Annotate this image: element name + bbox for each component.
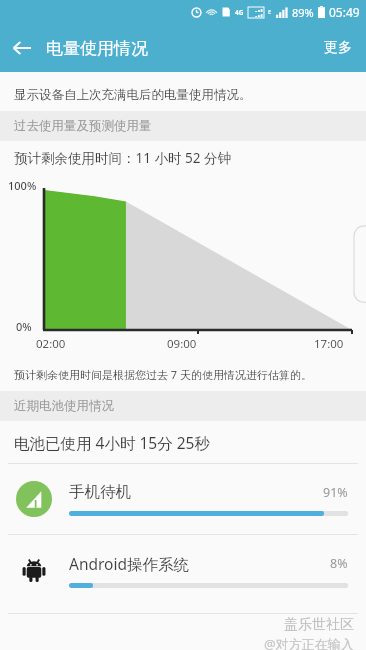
button[interactable]: Back [0, 26, 44, 70]
staticText: 手机待机 [69, 482, 131, 502]
staticText: 8% [330, 555, 348, 572]
button[interactable]: 手机待机 [0, 464, 366, 534]
staticText: 09:00 [167, 336, 197, 352]
staticText: 电池已使用 4小时 15分 25秒 [14, 432, 210, 453]
staticText: 4G [235, 8, 244, 17]
staticText: 预计剩余使用时间是根据您过去 7 天的使用情况进行估算的。 [14, 367, 313, 382]
staticText: 100% [8, 178, 37, 193]
staticText: 过去使用量及预测使用量 [14, 118, 152, 134]
staticText: 更多 [324, 39, 352, 57]
staticText: 盖乐世社区 [284, 616, 354, 634]
staticText: 预计剩余使用时间：11 小时 52 分钟 [14, 149, 231, 167]
staticText: 电量使用情况 [46, 38, 148, 59]
staticText: Android操作系统 [69, 553, 190, 574]
staticText: 近期电池使用情况 [14, 398, 114, 414]
staticText: 02:00 [36, 336, 66, 352]
staticText: 91% [323, 484, 348, 501]
staticText: 0% [16, 319, 32, 334]
staticText: E [268, 8, 272, 16]
staticText: 05:49 [329, 4, 360, 20]
staticText: 17:00 [314, 336, 344, 352]
staticText: @对方正在输入 [264, 635, 354, 650]
staticText: 89% [292, 5, 314, 20]
button[interactable]: 更多 [310, 27, 366, 69]
button[interactable]: Android操作系统 [0, 535, 366, 605]
staticText: 显示设备自上次充满电后的电量使用情况。 [14, 87, 252, 103]
